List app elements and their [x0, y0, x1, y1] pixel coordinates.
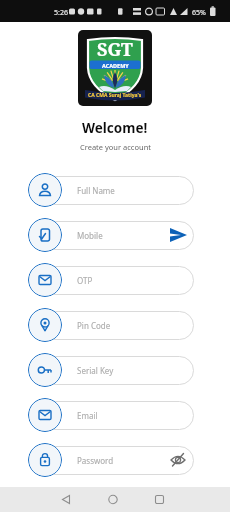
staticText: Full Name	[77, 185, 115, 196]
staticText: Serial Key	[77, 365, 114, 376]
button[interactable]: Password	[0, 443, 230, 477]
staticText: Mobile	[77, 230, 103, 241]
button[interactable]: OTP	[0, 263, 230, 297]
staticText: Welcome!	[82, 119, 148, 137]
staticText: Password	[77, 455, 114, 466]
button[interactable]: Pin Code	[0, 308, 230, 342]
staticText: Email	[77, 410, 98, 421]
staticText: OTP	[77, 275, 93, 286]
button[interactable]: Full Name	[0, 173, 230, 207]
button[interactable]: Serial Key	[0, 353, 230, 387]
staticText: Create your account	[80, 142, 151, 152]
staticText: 5:26	[54, 8, 68, 18]
button[interactable]	[0, 487, 76, 512]
button[interactable]: Email	[0, 398, 230, 432]
staticText: CA CMA Suraj Tatiya's	[88, 92, 142, 99]
staticText: SGT	[97, 37, 133, 62]
staticText: ACADEMY	[102, 62, 129, 69]
button[interactable]: Mobile	[0, 218, 230, 252]
staticText: Pin Code	[77, 320, 111, 331]
staticText: 65%	[192, 8, 206, 18]
button[interactable]	[153, 487, 230, 512]
button[interactable]	[76, 487, 153, 512]
